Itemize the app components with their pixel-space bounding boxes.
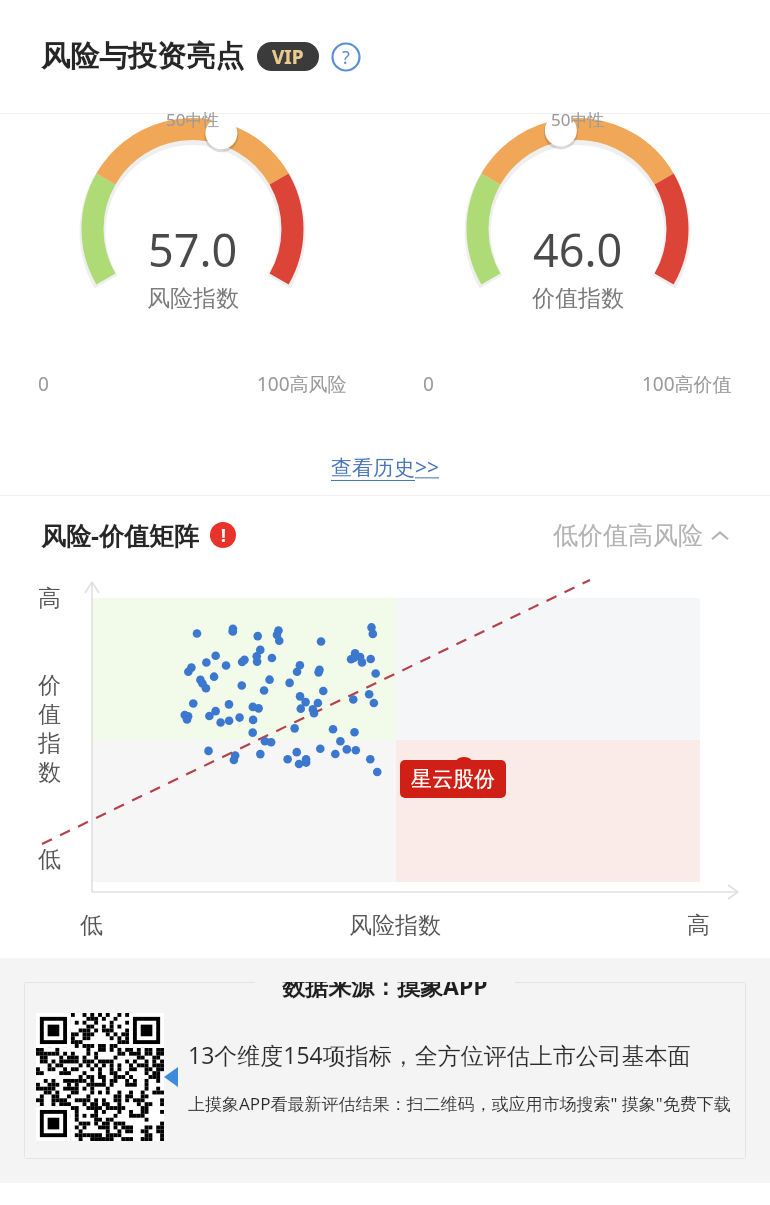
staticText: 100高价值	[642, 371, 732, 397]
button[interactable]: 低价值高风险	[553, 520, 729, 551]
button[interactable]: 星云股份	[400, 760, 506, 798]
staticText: 低	[38, 845, 61, 874]
staticText: 价值指数	[532, 284, 624, 313]
staticText: 风险指数	[147, 284, 239, 313]
staticText: 查看历史>>	[331, 453, 440, 482]
staticText: 50中性	[551, 108, 605, 131]
staticText: !	[221, 524, 226, 547]
staticText: 13个维度154项指标，全方位评估上市公司基本面	[188, 1039, 691, 1070]
button[interactable]: 警告	[210, 522, 236, 548]
staticText: 高	[38, 584, 61, 613]
staticText: 50中性	[166, 108, 220, 131]
staticText: ?	[342, 45, 350, 70]
staticText: 低	[80, 911, 103, 940]
staticText: 上摸象APP看最新评估结果：扫二维码，或应用市场搜索" 摸象"免费下载	[188, 1092, 731, 1115]
staticText: 0	[38, 371, 49, 397]
staticText: 高	[687, 911, 710, 940]
staticText: 低价值高风险	[553, 520, 703, 551]
staticText: 风险指数	[349, 911, 441, 940]
staticText: 0	[423, 371, 434, 397]
staticText: 值	[38, 700, 61, 729]
button[interactable]: VIP	[257, 42, 319, 71]
button[interactable]: Help	[331, 42, 361, 72]
staticText: 风险-价值矩阵	[41, 518, 200, 552]
staticText: VIP	[272, 44, 304, 70]
staticText: 46.0	[533, 219, 623, 280]
staticText: 100高风险	[257, 371, 347, 397]
staticText: 星云股份	[411, 766, 495, 792]
staticText: 数	[38, 758, 61, 787]
staticText: 指	[38, 729, 61, 758]
staticText: 价	[38, 671, 61, 700]
staticText: 数据来源：摸象APP	[282, 982, 488, 1001]
button[interactable]: 查看历史>>	[323, 445, 448, 490]
staticText: 57.0	[148, 219, 238, 280]
staticText: 风险与投资亮点	[41, 38, 244, 75]
